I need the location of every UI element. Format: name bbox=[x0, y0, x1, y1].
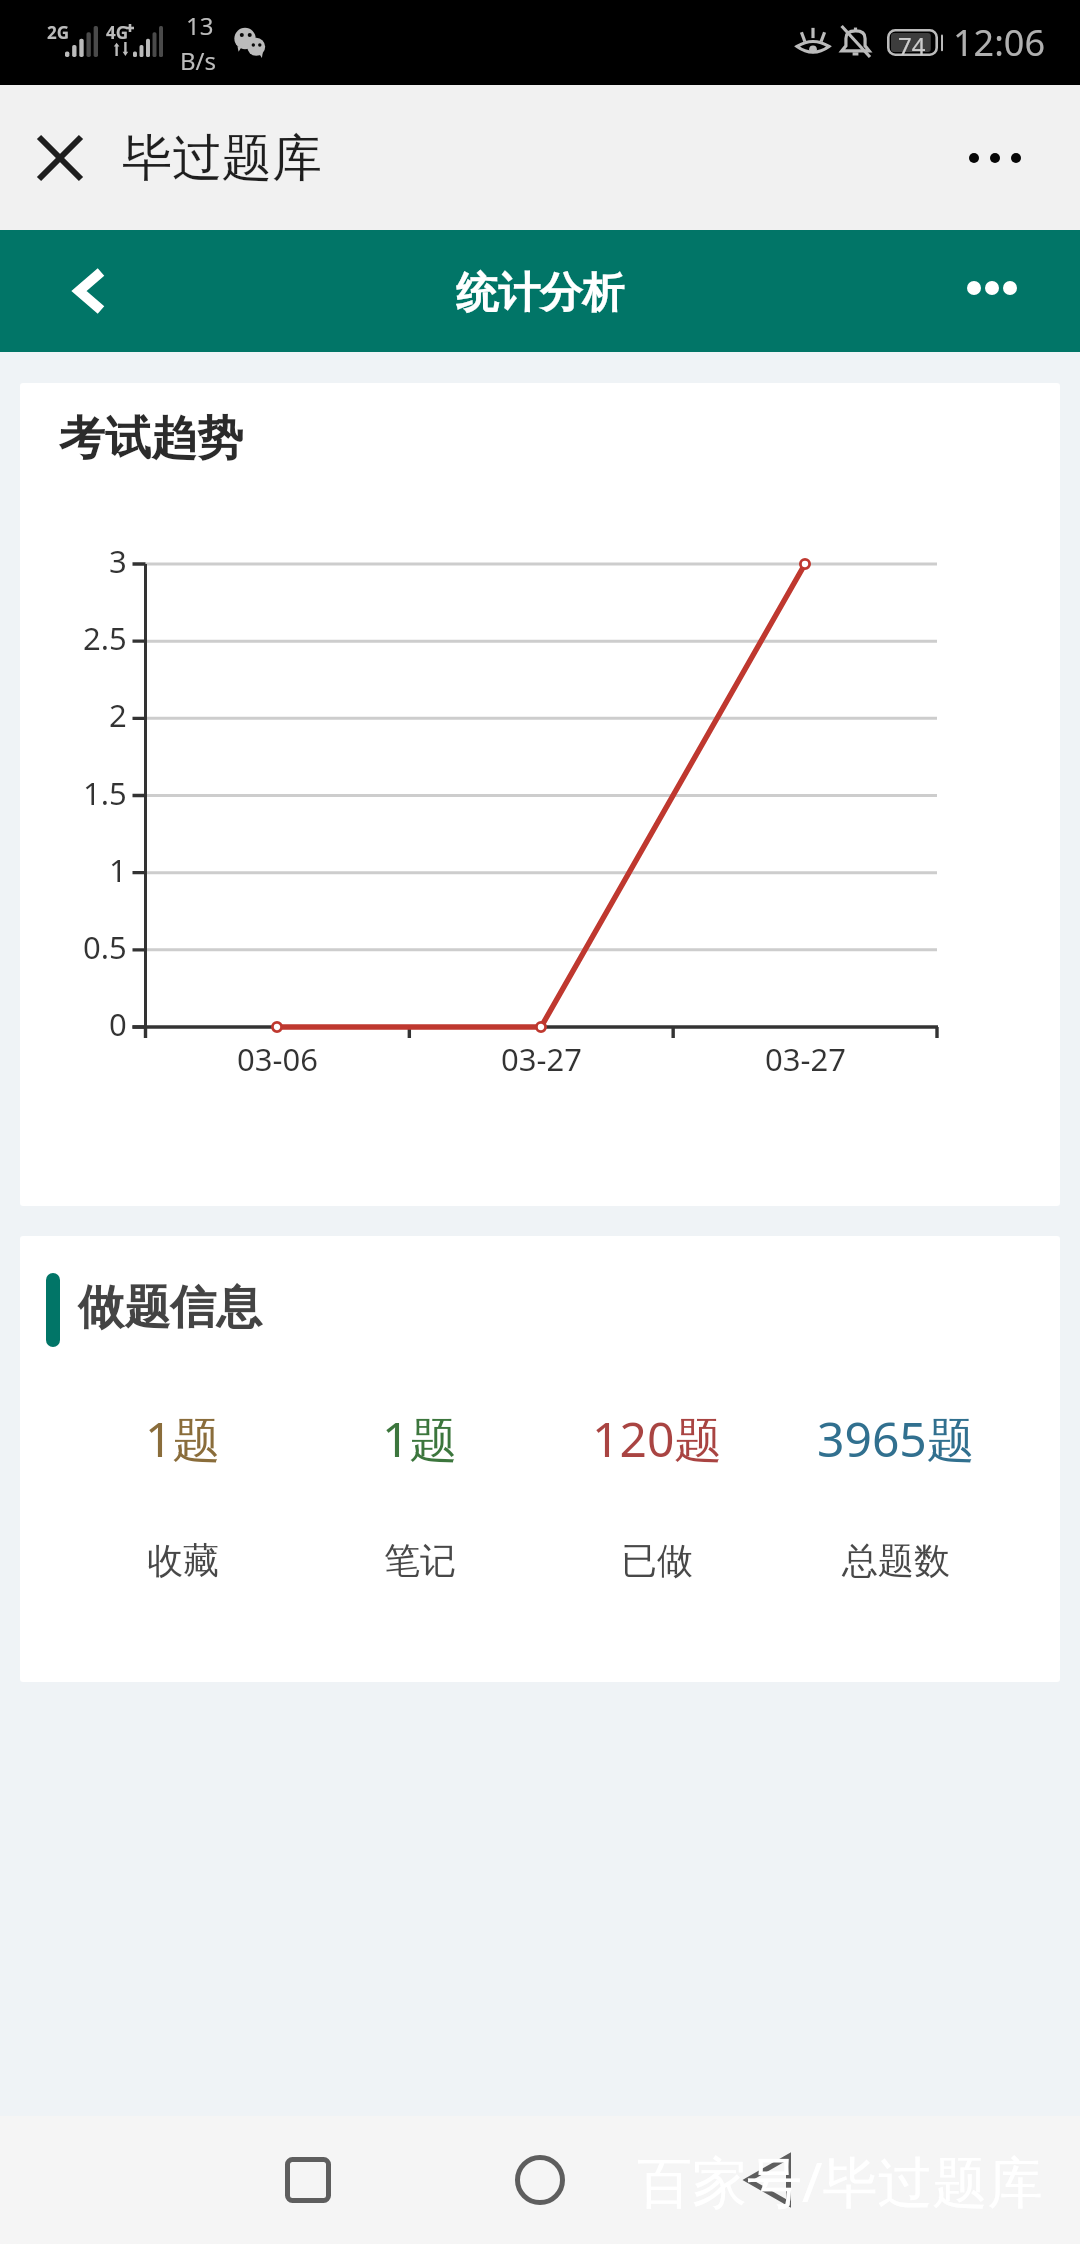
button[interactable]: Back bbox=[708, 2120, 828, 2240]
staticText: 74 bbox=[898, 29, 926, 56]
staticText: 笔记 bbox=[384, 1538, 456, 1583]
staticText: 收藏 bbox=[147, 1538, 219, 1583]
staticText: 1 bbox=[109, 849, 127, 891]
staticText: 03-27 bbox=[765, 1038, 846, 1080]
staticText: 3 bbox=[109, 540, 127, 582]
staticText: 1.5 bbox=[83, 772, 127, 814]
staticText: 120题 bbox=[592, 1406, 723, 1472]
staticText: 统计分析 bbox=[456, 267, 624, 320]
staticText: 13 bbox=[186, 9, 214, 42]
staticText: 4G bbox=[106, 21, 129, 44]
staticText: 百家号/毕过题库 bbox=[637, 2143, 1043, 2218]
button[interactable]: Home bbox=[480, 2120, 600, 2240]
button[interactable]: 1题 bbox=[68, 1406, 298, 1583]
staticText: 毕过题库 bbox=[122, 127, 322, 190]
button[interactable]: Recents bbox=[248, 2120, 368, 2240]
staticText: 2 bbox=[109, 694, 127, 736]
staticText: 3965题 bbox=[817, 1406, 975, 1472]
staticText: 1题 bbox=[145, 1406, 221, 1472]
staticText: 0 bbox=[109, 1003, 127, 1045]
button[interactable]: More bbox=[944, 240, 1040, 336]
staticText: B/s bbox=[180, 44, 217, 77]
staticText: 考试趋势 bbox=[59, 410, 243, 468]
button[interactable]: 1题 bbox=[305, 1406, 535, 1583]
staticText: 总题数 bbox=[842, 1538, 950, 1583]
staticText: 1题 bbox=[382, 1406, 458, 1472]
button[interactable]: Close bbox=[0, 99, 120, 217]
staticText: 12:06 bbox=[953, 18, 1046, 67]
button[interactable]: 3965题 bbox=[781, 1406, 1011, 1583]
button[interactable]: Back bbox=[48, 249, 132, 333]
staticText: 做题信息 bbox=[78, 1279, 262, 1337]
button[interactable]: More options bbox=[939, 102, 1051, 214]
staticText: 03-06 bbox=[237, 1038, 318, 1080]
staticText: 03-27 bbox=[501, 1038, 582, 1080]
staticText: 2G bbox=[47, 21, 70, 44]
staticText: 2.5 bbox=[83, 617, 127, 659]
button[interactable]: 120题 bbox=[542, 1406, 772, 1583]
staticText: 0.5 bbox=[83, 926, 127, 968]
staticText: 已做 bbox=[621, 1538, 693, 1583]
